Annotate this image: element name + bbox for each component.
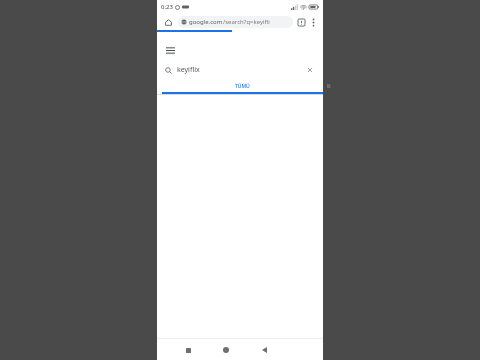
button[interactable]: More options (308, 17, 318, 27)
button[interactable]: keyiflix (161, 62, 319, 78)
button[interactable]: TÜMÜ (162, 81, 323, 94)
button[interactable]: Back (257, 343, 271, 357)
button[interactable]: Clear search (305, 65, 315, 75)
button[interactable]: Recent apps (181, 343, 195, 357)
staticText: TÜMÜ (235, 83, 250, 90)
staticText: /search?q=keyifli (223, 18, 270, 26)
button[interactable]: Home (219, 343, 233, 357)
button[interactable]: Page info (296, 17, 306, 27)
button[interactable]: google.com (178, 16, 293, 28)
staticText: keyiflix (177, 65, 200, 75)
staticText: google.com (189, 18, 223, 26)
button[interactable]: Home (162, 16, 174, 28)
staticText: 0:23 (161, 3, 173, 11)
button[interactable]: Menu (163, 43, 177, 57)
